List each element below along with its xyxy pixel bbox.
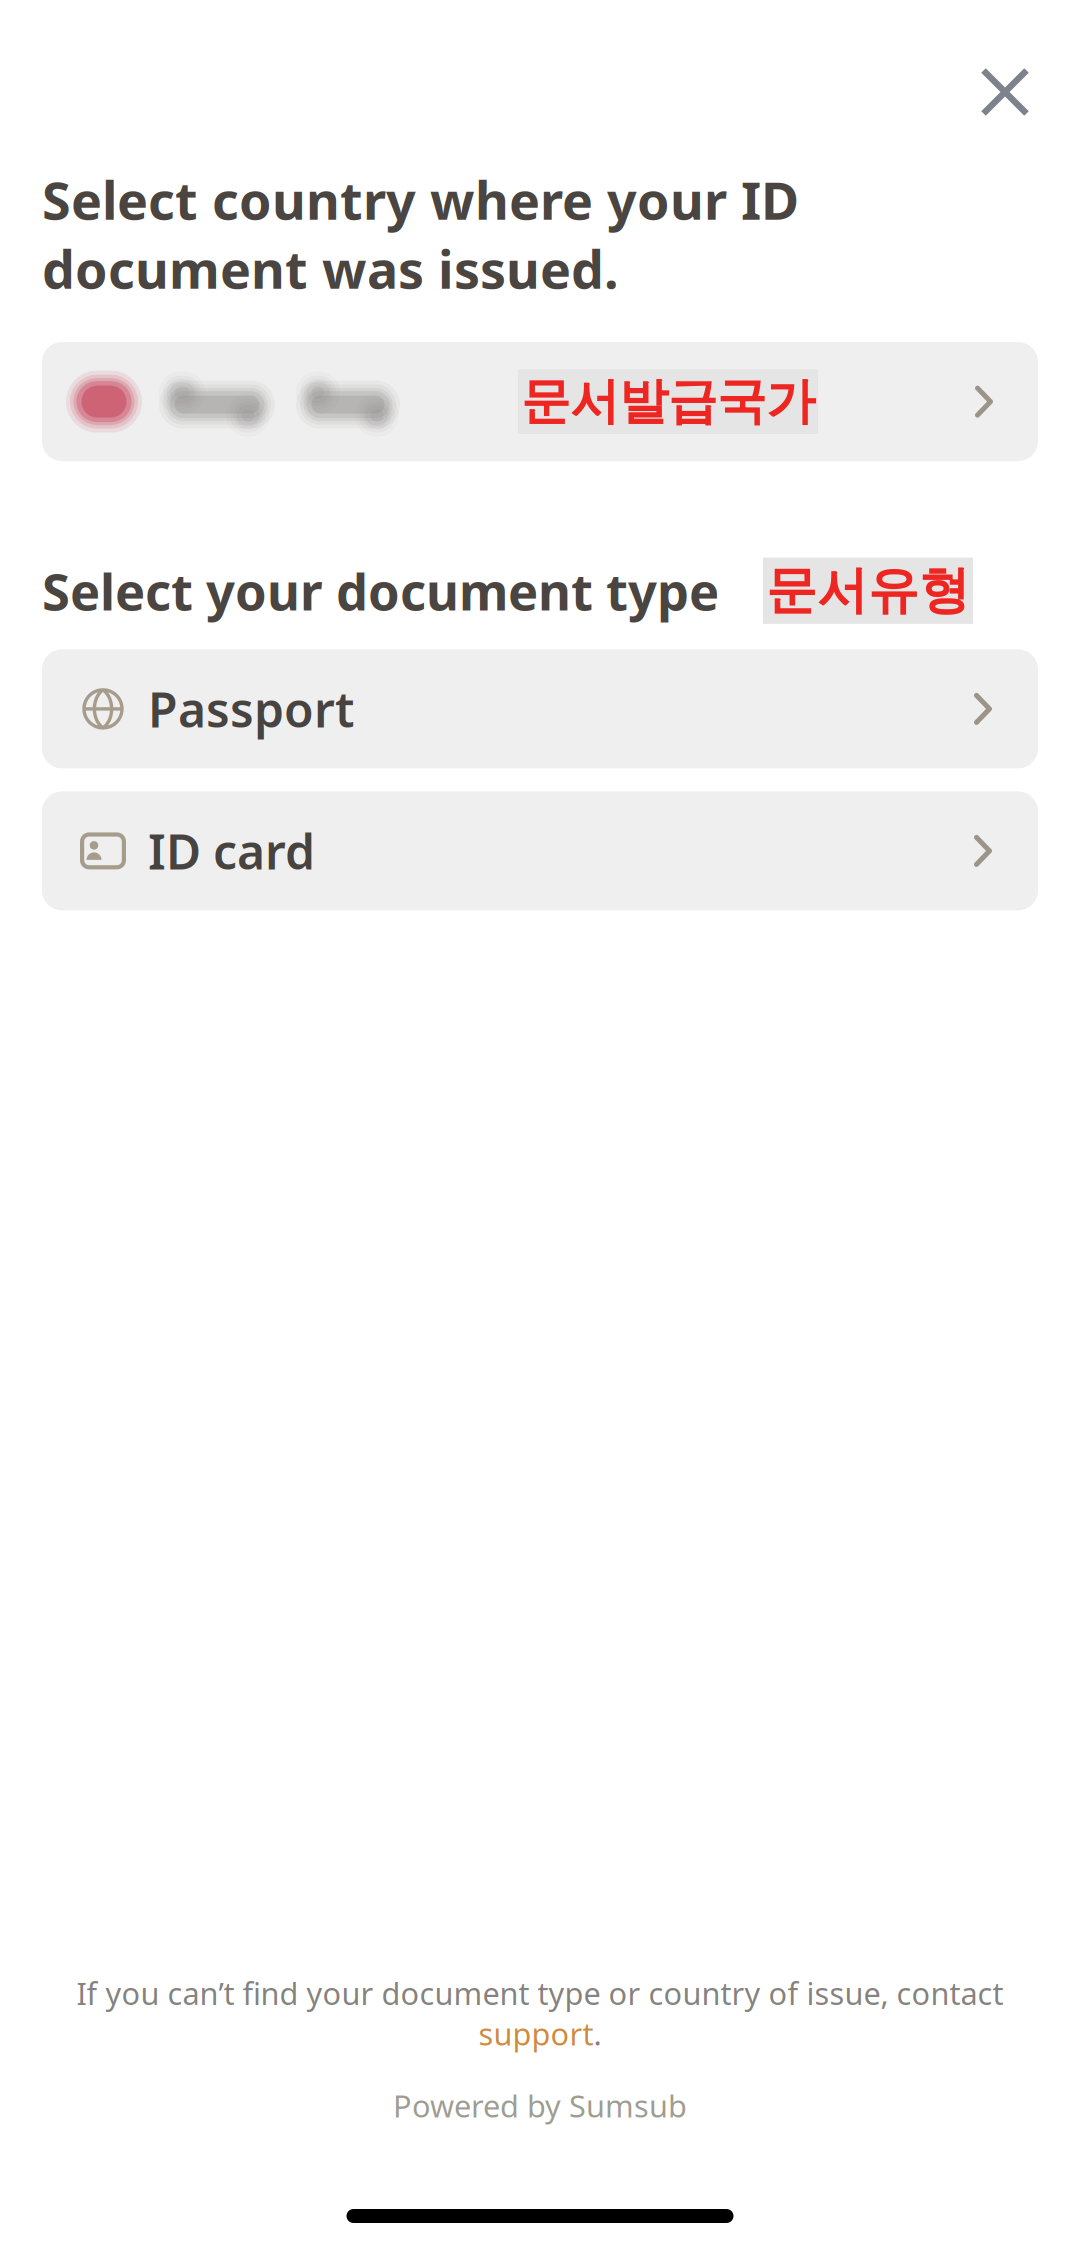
button[interactable]: Passport (42, 649, 1038, 768)
staticText: Select your document type (42, 557, 719, 624)
staticText: ID card (148, 819, 315, 883)
staticText: 문서발급국가 (521, 371, 815, 432)
button[interactable]: Close (957, 44, 1053, 140)
button[interactable]: 문서발급국가 (42, 342, 1038, 461)
staticText: Powered by Sumsub (393, 2085, 687, 2126)
staticText: 문서유형 (766, 560, 970, 622)
staticText: If you can’t find your document type or … (76, 1973, 1003, 2013)
staticText: Passport (148, 677, 354, 741)
button[interactable]: ID card (42, 791, 1038, 910)
staticText: . (593, 2013, 601, 2054)
button[interactable]: support (478, 2013, 593, 2054)
staticText: support (478, 2013, 593, 2054)
staticText: Select country where your ID document wa… (42, 165, 799, 303)
